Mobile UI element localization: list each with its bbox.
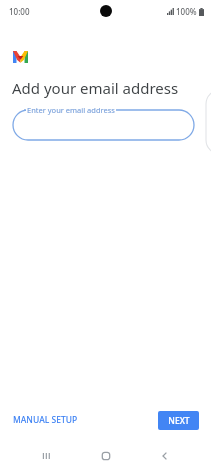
button[interactable]: MANUAL SETUP [8, 410, 83, 430]
staticText: NEXT [168, 415, 190, 427]
staticText: 10:00 [9, 6, 30, 17]
button[interactable]: Enter your email address [13, 110, 194, 140]
staticText: Add your email address [12, 78, 179, 98]
button[interactable]: NEXT [158, 411, 199, 430]
button[interactable]: Back [151, 442, 179, 470]
staticText: Enter your email address [27, 105, 115, 115]
button[interactable]: Recent apps [32, 442, 60, 470]
button[interactable]: Home [92, 442, 120, 470]
staticText: MANUAL SETUP [13, 414, 78, 426]
staticText: 100% [176, 6, 197, 17]
